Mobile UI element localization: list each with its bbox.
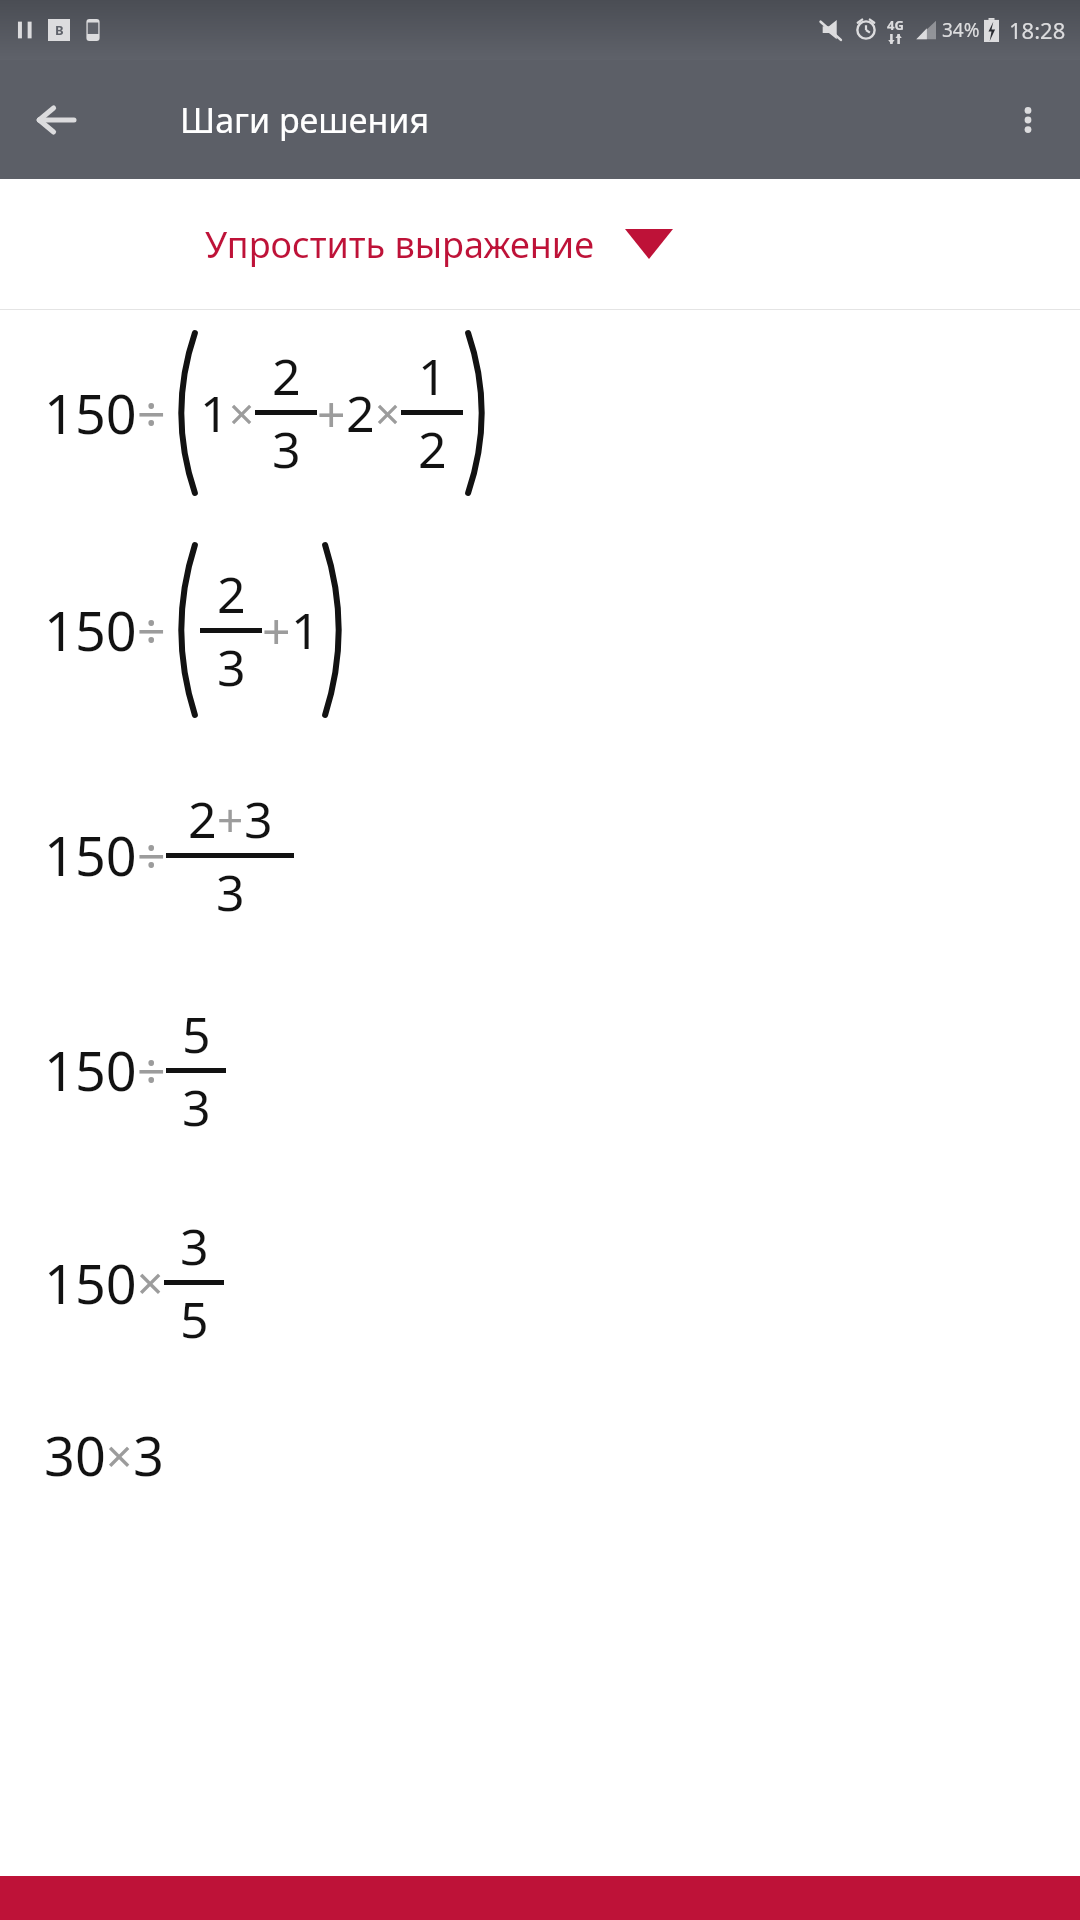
staticText: 3 bbox=[133, 1418, 164, 1492]
staticText: ÷ bbox=[137, 1036, 166, 1104]
staticText: 2 bbox=[418, 415, 447, 483]
staticText: 1 bbox=[418, 342, 447, 410]
button[interactable]: 150 bbox=[0, 515, 1080, 745]
staticText: 150 bbox=[44, 818, 137, 892]
staticText: 30 bbox=[44, 1418, 106, 1492]
staticText: ÷ bbox=[137, 596, 166, 664]
staticText: 4G bbox=[887, 16, 904, 34]
staticText: 2 bbox=[272, 342, 301, 410]
staticText: 150 bbox=[44, 1033, 137, 1107]
staticText: ÷ bbox=[137, 821, 166, 889]
staticText: 3 bbox=[180, 1212, 209, 1280]
staticText: × bbox=[106, 1424, 133, 1487]
staticText: 1 bbox=[200, 379, 229, 447]
button[interactable]: 150 bbox=[0, 310, 1080, 515]
button[interactable]: Back bbox=[26, 90, 86, 150]
staticText: 5 bbox=[180, 1285, 209, 1353]
staticText: 3 bbox=[272, 415, 301, 483]
staticText: 3 bbox=[217, 633, 246, 701]
button[interactable]: Упростить выражение bbox=[0, 179, 1080, 309]
button[interactable]: 30 bbox=[0, 1390, 1080, 1520]
staticText: 3 bbox=[216, 858, 245, 926]
staticText: 150 bbox=[44, 376, 137, 450]
staticText: 34% bbox=[942, 17, 980, 43]
staticText: 3 bbox=[182, 1073, 211, 1141]
button[interactable]: 150 bbox=[0, 745, 1080, 965]
button[interactable]: 150 bbox=[0, 1175, 1080, 1390]
staticText: 150 bbox=[44, 1246, 137, 1320]
staticText: × bbox=[137, 1251, 164, 1314]
staticText: Упростить выражение bbox=[205, 220, 595, 269]
staticText: + bbox=[217, 788, 244, 851]
staticText: 1 bbox=[291, 596, 320, 664]
staticText: 3 bbox=[244, 785, 273, 853]
staticText: 2 bbox=[188, 785, 217, 853]
staticText: 18:28 bbox=[1009, 15, 1066, 45]
staticText: + bbox=[262, 596, 291, 664]
staticText: ÷ bbox=[137, 379, 166, 447]
staticText: 2 bbox=[346, 379, 375, 447]
staticText: Шаги решения bbox=[180, 97, 430, 143]
staticText: 5 bbox=[182, 1000, 211, 1068]
staticText: × bbox=[229, 383, 255, 443]
staticText: + bbox=[317, 379, 346, 447]
staticText: B bbox=[55, 21, 64, 39]
staticText: × bbox=[375, 383, 401, 443]
button[interactable]: More options bbox=[998, 90, 1058, 150]
staticText: 2 bbox=[217, 560, 246, 628]
button[interactable]: 150 bbox=[0, 965, 1080, 1175]
staticText: 150 bbox=[44, 593, 137, 667]
